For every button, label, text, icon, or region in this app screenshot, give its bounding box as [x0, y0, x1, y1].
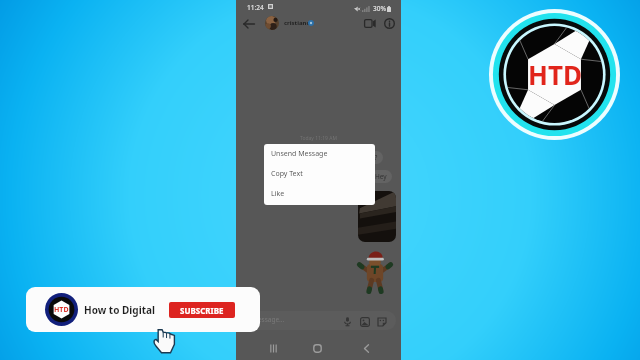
button[interactable]: Unsend Message [264, 144, 375, 164]
staticText: HTD [528, 57, 582, 92]
button[interactable]: Like [264, 184, 375, 204]
button[interactable]: Back [242, 17, 256, 31]
button[interactable]: Gallery [359, 316, 370, 327]
staticText: How to Digital [84, 303, 155, 317]
button[interactable]: Copy Text [264, 164, 375, 184]
staticText: Message... [252, 315, 285, 324]
button[interactable]: Back [360, 342, 372, 354]
staticText: cristiano [284, 19, 311, 27]
button[interactable]: Video call [363, 17, 376, 30]
staticText: hi cristiano? [341, 153, 378, 162]
button[interactable]: Recent apps [267, 342, 279, 354]
staticText: Today 11:19 AM [236, 135, 401, 142]
staticText: Like [271, 189, 285, 199]
staticText: 11:24 [247, 3, 264, 12]
button[interactable]: Info [383, 17, 396, 30]
button[interactable]: SUBSCRIBE [169, 302, 235, 318]
staticText: Unsend Message [271, 149, 328, 159]
staticText: 30% [373, 4, 386, 13]
staticText: Hey [375, 172, 387, 181]
button[interactable]: Voice message [342, 316, 353, 327]
staticText: Copy Text [271, 169, 303, 179]
button[interactable]: Stickers [376, 316, 387, 327]
staticText: SUBSCRIBE [180, 305, 224, 316]
staticText: HTD [54, 305, 69, 315]
button[interactable]: Home [311, 342, 323, 354]
